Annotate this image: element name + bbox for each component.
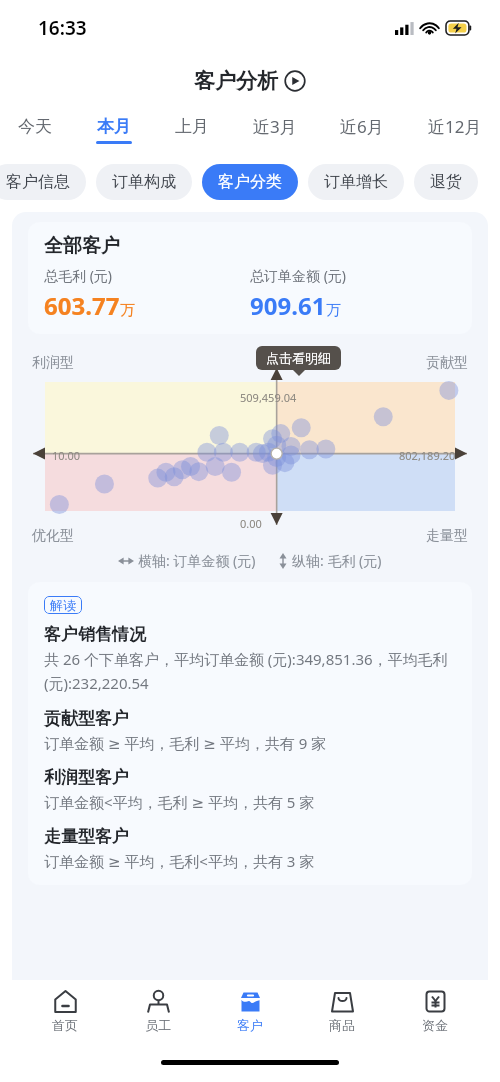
staticText: 万: [120, 301, 135, 320]
staticText: 商品: [329, 1017, 355, 1033]
button[interactable]: 员工: [131, 985, 185, 1037]
button[interactable]: 资金: [408, 985, 462, 1037]
staticText: 万: [326, 301, 341, 320]
staticText: 走量型: [426, 527, 468, 545]
staticText: 客户: [237, 1017, 263, 1033]
staticText: 利润型客户: [44, 767, 129, 788]
staticText: 客户分类: [218, 172, 282, 192]
button[interactable]: 本月: [92, 112, 136, 148]
staticText: 订单金额<平均，毛利 ≥ 平均，共有 5 家: [44, 792, 315, 812]
staticText: 订单金额 ≥ 平均，毛利<平均，共有 3 家: [44, 851, 315, 871]
staticText: 走量型客户: [44, 826, 129, 847]
staticText: 603.77: [44, 289, 120, 322]
button[interactable]: 订单增长: [308, 164, 404, 200]
staticText: 解读: [50, 597, 76, 613]
staticText: 员工: [145, 1017, 171, 1033]
button[interactable]: 上月: [171, 112, 213, 148]
button[interactable]: 首页: [38, 985, 92, 1037]
button[interactable]: 全部客户: [28, 222, 472, 334]
staticText: 909.61: [250, 289, 326, 322]
staticText: 16:33: [38, 15, 87, 41]
button[interactable]: 播放讲解: [284, 70, 306, 92]
staticText: 横轴: 订单金额 (元): [138, 551, 256, 570]
staticText: 客户分析: [194, 68, 278, 94]
button[interactable]: 近12月: [424, 111, 486, 149]
button[interactable]: 客户: [223, 985, 277, 1037]
staticText: 纵轴: 毛利 (元): [292, 551, 382, 570]
staticText: 近12月: [428, 115, 482, 138]
staticText: 总毛利 (元): [44, 266, 113, 285]
staticText: 本月: [97, 116, 131, 137]
button[interactable]: 商品: [315, 985, 369, 1037]
button[interactable]: 客户信息: [0, 164, 86, 200]
staticText: 订单构成: [112, 172, 176, 192]
staticText: 总订单金额 (元): [250, 266, 347, 285]
staticText: 今天: [18, 116, 52, 137]
staticText: 首页: [52, 1017, 78, 1033]
button[interactable]: 今天: [14, 112, 56, 148]
button[interactable]: 近3月: [249, 111, 301, 149]
staticText: 利润型: [32, 354, 74, 372]
button[interactable]: 客户分类散点图: [12, 344, 488, 549]
button[interactable]: 退货: [414, 164, 478, 200]
staticText: 订单增长: [324, 172, 388, 192]
staticText: 点击看明细: [266, 350, 331, 366]
staticText: 近6月: [340, 115, 384, 138]
staticText: 509,459.04: [240, 390, 297, 405]
staticText: 全部客户: [44, 234, 120, 258]
staticText: 订单金额 ≥ 平均，毛利 ≥ 平均，共有 9 家: [44, 733, 327, 753]
staticText: 资金: [422, 1017, 448, 1033]
staticText: 客户信息: [6, 172, 70, 192]
staticText: 共 26 个下单客户，平均订单金额 (元):349,851.36，平均毛利 (元…: [44, 649, 456, 694]
staticText: 上月: [175, 116, 209, 137]
staticText: 优化型: [32, 527, 74, 545]
staticText: 贡献型客户: [44, 708, 129, 729]
button[interactable]: 客户分类: [202, 164, 298, 200]
staticText: 10.00: [52, 448, 81, 463]
staticText: 802,189.20: [399, 448, 456, 463]
staticText: 退货: [430, 172, 462, 192]
button[interactable]: 近6月: [336, 111, 388, 149]
staticText: 贡献型: [426, 354, 468, 372]
staticText: 0.00: [240, 516, 262, 531]
staticText: 客户销售情况: [44, 624, 146, 645]
button[interactable]: 订单构成: [96, 164, 192, 200]
staticText: 近3月: [253, 115, 297, 138]
